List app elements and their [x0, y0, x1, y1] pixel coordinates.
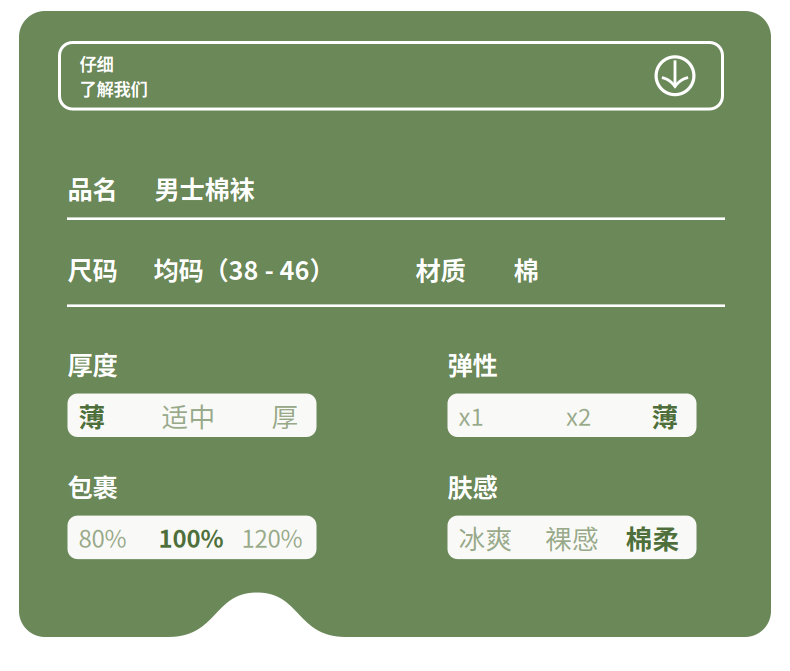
staticText: 棉柔: [625, 518, 679, 557]
staticText: 男士棉袜: [154, 169, 254, 206]
staticText: 品名: [67, 169, 117, 206]
staticText: 100%: [158, 520, 223, 555]
staticText: 包裹: [67, 467, 117, 504]
staticText: 80%: [78, 520, 126, 555]
button[interactable]: 80%: [67, 516, 316, 559]
staticText: 了解我们: [79, 76, 147, 101]
staticText: 尺码: [67, 250, 117, 287]
staticText: 肤感: [447, 467, 497, 504]
staticText: 裸感: [545, 518, 599, 557]
staticText: 弹性: [447, 345, 497, 382]
staticText: 适中: [161, 396, 215, 434]
staticText: 薄: [651, 396, 678, 434]
staticText: 120%: [241, 520, 302, 555]
button[interactable]: x1: [447, 393, 696, 437]
staticText: 冰爽: [458, 518, 512, 557]
staticText: 仔细: [79, 51, 113, 76]
button[interactable]: 薄: [67, 393, 316, 437]
staticText: 薄: [78, 396, 105, 434]
staticText: 均码（38 - 46）: [153, 250, 334, 287]
staticText: 材质: [415, 250, 465, 287]
staticText: x1: [458, 398, 483, 433]
staticText: 厚度: [67, 345, 117, 382]
staticText: 厚: [271, 396, 298, 434]
staticText: 棉: [513, 250, 538, 287]
button[interactable]: 仔细: [59, 42, 722, 109]
button[interactable]: 冰爽: [447, 516, 696, 559]
staticText: x2: [566, 398, 591, 433]
